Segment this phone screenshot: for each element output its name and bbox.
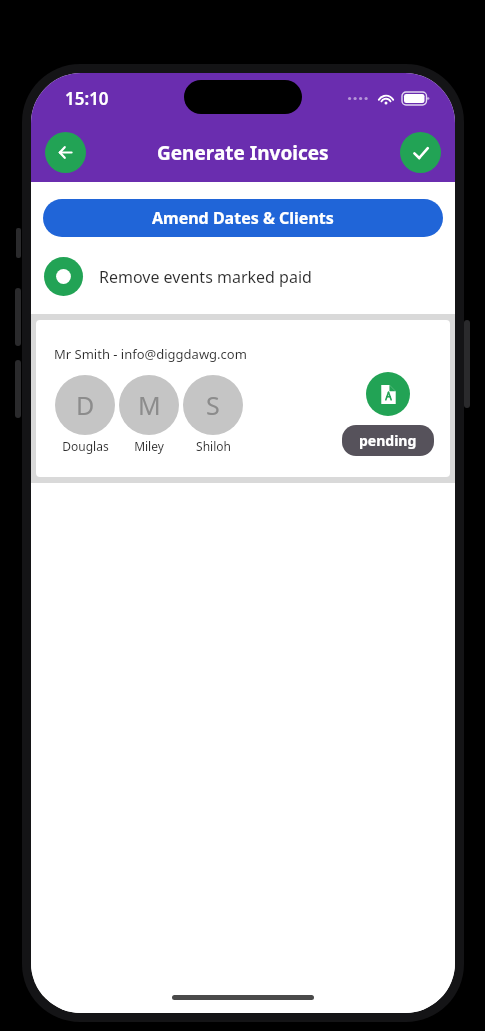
staticText: Generate Invoices xyxy=(157,140,329,166)
button[interactable]: Generate PDF xyxy=(366,372,410,416)
button[interactable]: Remove events marked paid xyxy=(31,253,455,300)
staticText: Shiloh xyxy=(196,438,231,454)
staticText: M xyxy=(138,388,161,422)
staticText: Douglas xyxy=(62,438,109,454)
staticText: D xyxy=(76,388,95,422)
staticText: Miley xyxy=(134,438,164,454)
staticText: S xyxy=(206,388,220,422)
button[interactable]: Mr Smith - info@diggdawg.com xyxy=(36,320,450,477)
staticText: 15:10 xyxy=(65,87,109,110)
button[interactable]: Confirm xyxy=(400,132,441,173)
staticText: pending xyxy=(359,431,417,450)
staticText: Remove events marked paid xyxy=(99,266,312,288)
button[interactable]: D xyxy=(55,375,115,435)
button[interactable]: S xyxy=(183,375,243,435)
button[interactable]: pending xyxy=(342,425,434,456)
staticText: Amend Dates & Clients xyxy=(152,207,334,229)
button[interactable]: M xyxy=(119,375,179,435)
button[interactable]: Amend Dates & Clients xyxy=(43,199,443,237)
button[interactable]: Back xyxy=(45,132,86,173)
staticText: Mr Smith - info@diggdawg.com xyxy=(54,345,247,363)
